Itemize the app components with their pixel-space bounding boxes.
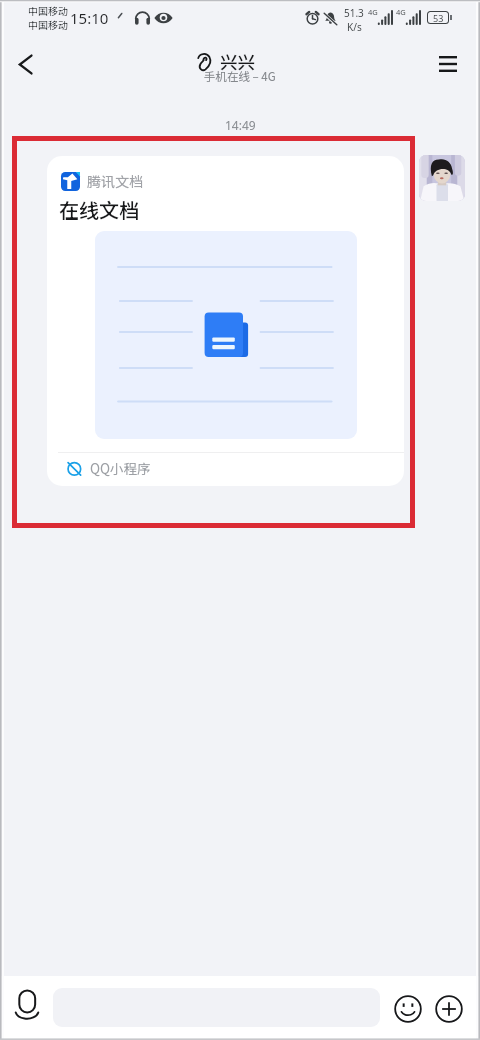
staticText: 53 (433, 12, 444, 23)
staticText: 51.3 (344, 6, 364, 20)
staticText: 4G (368, 7, 378, 17)
staticText: 4G (396, 7, 406, 17)
staticText: 14:49 (225, 117, 256, 133)
button[interactable]: Avatar (419, 155, 465, 201)
staticText: 腾讯文档 (87, 171, 143, 191)
button[interactable]: 腾讯文档 (47, 156, 404, 486)
button[interactable]: Emoji (386, 987, 429, 1030)
staticText: 手机在线 – 4G (204, 68, 276, 85)
staticText: K/s (347, 20, 362, 34)
staticText: 兴兴 (220, 49, 255, 74)
staticText: 15:10 (70, 8, 109, 28)
button[interactable]: More (427, 987, 470, 1030)
staticText: 中国移动 (28, 3, 68, 17)
staticText: 在线文档 (59, 195, 139, 224)
button[interactable]: Back (4, 43, 46, 85)
staticText: 中国移动 (28, 17, 68, 31)
staticText: QQ小程序 (90, 458, 151, 478)
button[interactable]: Voice message (5, 982, 49, 1026)
button[interactable]: Menu (427, 43, 469, 85)
